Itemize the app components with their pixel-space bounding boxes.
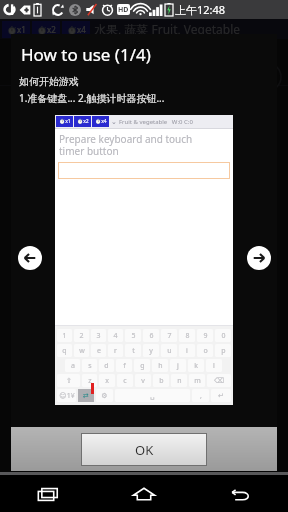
button[interactable]: k [188,359,204,372]
staticText: Fruit & vegetable W:0 C:0 [119,118,193,126]
staticText: 6 [149,331,154,341]
staticText: u [167,346,172,356]
staticText: x [105,376,109,386]
button[interactable]: l [206,359,222,372]
staticText: a [71,361,75,371]
staticText: 7 [167,331,172,341]
staticText: i [186,346,188,356]
button[interactable]: Previous [16,244,44,272]
staticText: , [200,391,202,401]
staticText: o [203,346,208,356]
button[interactable]: f [116,359,132,372]
staticText: b [159,376,164,386]
staticText: 5 [131,331,136,341]
button[interactable]: Back [192,475,288,512]
button[interactable]: 1 [57,329,72,342]
button[interactable]: h [152,359,168,372]
staticText: 2 [79,331,84,341]
button[interactable]: OK [82,434,206,465]
staticText: p [221,346,226,356]
staticText: m [194,376,201,386]
staticText: e [97,346,101,356]
staticText: 如何开始游戏 [19,75,79,88]
button[interactable]: , [192,389,209,402]
button[interactable]: p [215,344,231,357]
button[interactable]: 3 [91,329,106,342]
button[interactable]: u [161,344,177,357]
staticText: ↵ [218,392,224,400]
staticText: 1.准备键盘... 2.触摸计时器按钮... [19,91,165,105]
button[interactable]: 4 [108,329,123,342]
staticText: d [104,361,109,371]
button[interactable]: ☺1¥ [57,389,76,402]
staticText: ⏱x4 [67,24,86,35]
staticText: r [114,346,117,356]
staticText: c [123,376,127,386]
staticText: HD [118,5,129,15]
staticText: 水果, 蔬菜 Fruit, Vegetable [94,21,241,37]
staticText: j [177,361,179,371]
staticText: ␣ [150,392,155,400]
button[interactable]: ␣ [115,389,190,402]
button[interactable]: ⇧ [57,374,80,387]
staticText: 1 [62,331,67,341]
button[interactable]: w [74,344,89,357]
button[interactable]: b [153,374,169,387]
button[interactable]: ↵ [211,389,231,402]
button[interactable]: q [57,344,72,357]
button[interactable]: d [99,359,114,372]
button[interactable]: r [108,344,123,357]
button[interactable]: 6 [143,329,159,342]
button[interactable]: j [170,359,186,372]
button[interactable]: 2 [74,329,89,342]
button[interactable]: Next [245,244,273,272]
button[interactable]: a [65,359,80,372]
staticText: s [88,361,92,371]
staticText: ⇄ [83,392,89,400]
button[interactable]: 5 [125,329,141,342]
button[interactable]: c [117,374,133,387]
staticText: Prepare keyboard and touch timer button [59,132,193,158]
button[interactable]: o [197,344,213,357]
staticText: v [141,376,145,386]
button[interactable]: v [135,374,151,387]
staticText: n [177,376,182,386]
staticText: t [132,346,135,356]
button[interactable]: s [82,359,97,372]
button[interactable]: ⚙ [96,389,113,402]
staticText: OK [135,441,154,459]
button[interactable]: x [99,374,115,387]
button[interactable]: g [134,359,150,372]
button[interactable]: Home [96,475,192,512]
staticText: ⏱x1 [59,118,71,125]
button[interactable]: i [179,344,195,357]
staticText: l [213,361,215,371]
staticText: 准备键盘和触摸计时器按钮 [10,50,238,74]
button[interactable]: ⌫ [207,374,231,387]
button[interactable]: z [82,374,97,387]
staticText: ⇧ [66,377,72,385]
button[interactable]: Recents [0,475,96,512]
button[interactable]: ⇄ [78,389,94,402]
button[interactable]: m [189,374,205,387]
staticText: How to use (1/4) [21,43,151,66]
button[interactable]: 8 [179,329,195,342]
staticText: f [123,361,126,371]
staticText: k [194,361,198,371]
button[interactable]: 0 [215,329,231,342]
button[interactable]: 9 [197,329,213,342]
button[interactable]: n [171,374,187,387]
staticText: ⏱x4 [95,118,107,125]
staticText: 3 [96,331,101,341]
staticText: h [158,361,163,371]
staticText: 8 [185,331,190,341]
staticText: ⏱x1 [7,24,26,35]
button[interactable]: t [125,344,141,357]
button[interactable]: e [91,344,106,357]
staticText: 0 [221,331,226,341]
staticText: z [88,376,92,386]
button[interactable]: 7 [161,329,177,342]
staticText: ⏱x2 [37,24,56,35]
button[interactable]: y [143,344,159,357]
